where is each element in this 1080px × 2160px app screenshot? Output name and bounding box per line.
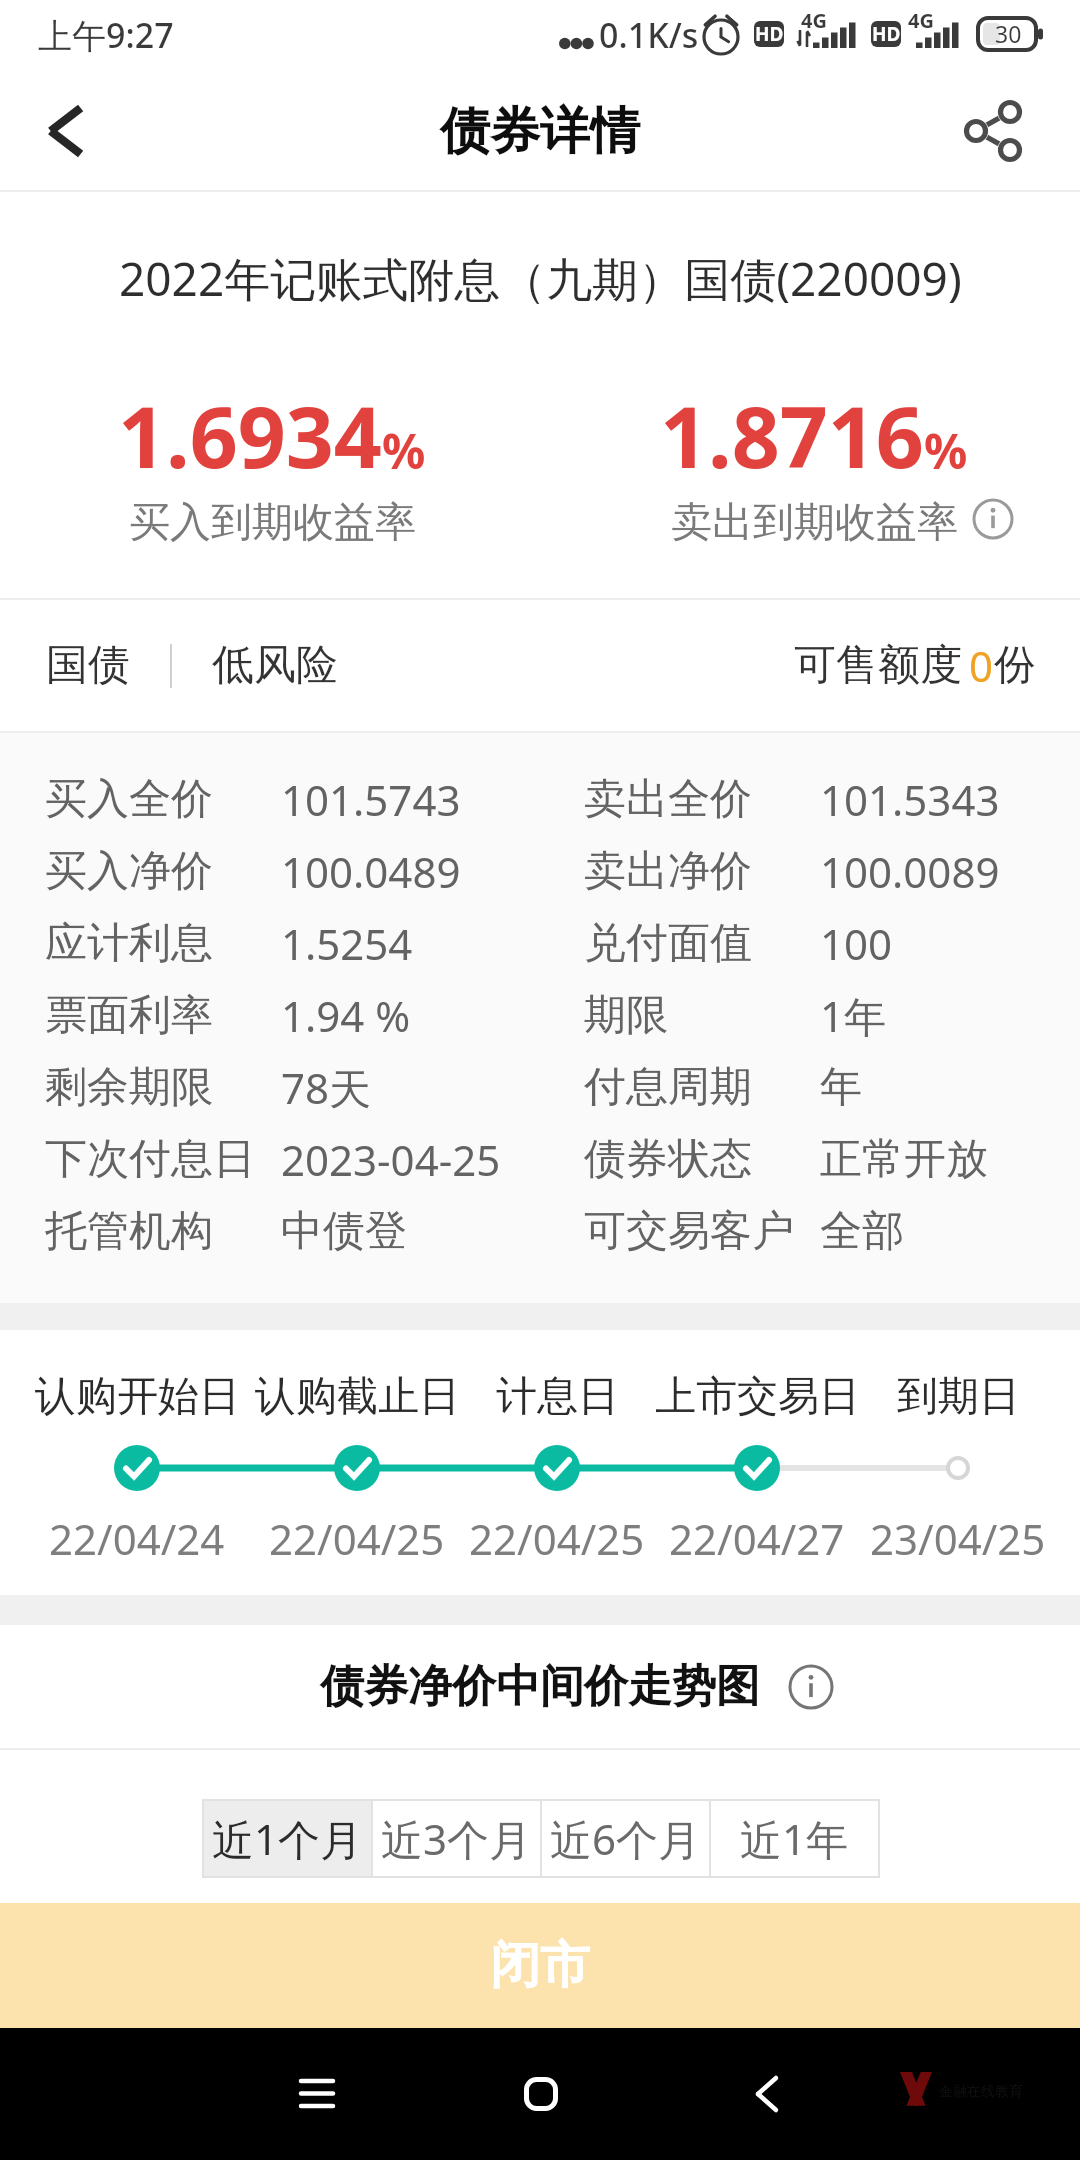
- staticText: 中债登: [281, 1205, 407, 1258]
- button[interactable]: Info: [779, 1655, 843, 1719]
- staticText: 卖出到期收益率: [671, 497, 958, 549]
- staticText: 1.5254: [281, 915, 413, 972]
- staticText: 到期日: [897, 1371, 1020, 1423]
- button[interactable]: 近1年: [711, 1801, 878, 1876]
- staticText: 买入到期收益率: [129, 497, 416, 549]
- staticText: %: [924, 418, 968, 483]
- button[interactable]: 近1个月: [204, 1801, 371, 1876]
- staticText: 78天: [281, 1059, 372, 1116]
- staticText: 可交易客户: [584, 1205, 794, 1258]
- staticText: 22/04/27: [669, 1510, 845, 1567]
- staticText: 低风险: [212, 639, 338, 692]
- button[interactable]: Back: [707, 2034, 827, 2154]
- staticText: %: [382, 418, 426, 483]
- staticText: 闭市: [490, 1934, 590, 1997]
- staticText: 下次付息日: [45, 1133, 255, 1186]
- button[interactable]: Info: [967, 493, 1019, 545]
- staticText: 卖出全价: [584, 773, 752, 826]
- staticText: 100: [820, 915, 893, 972]
- staticText: 22/04/24: [49, 1510, 225, 1567]
- staticText: 101.5343: [820, 771, 1000, 828]
- staticText: 22/04/25: [269, 1510, 445, 1567]
- staticText: 应计利息: [45, 917, 213, 970]
- staticText: 上午9:27: [38, 12, 174, 58]
- staticText: 近1个月: [212, 1810, 363, 1867]
- staticText: 票面利率: [45, 989, 213, 1042]
- button[interactable]: Recents: [257, 2034, 377, 2154]
- staticText: 2023-04-25: [281, 1131, 501, 1188]
- staticText: 1年: [820, 987, 887, 1044]
- staticText: 4G: [908, 7, 934, 34]
- staticText: 兑付面值: [584, 917, 752, 970]
- button[interactable]: 近6个月: [542, 1801, 709, 1876]
- button[interactable]: 闭市: [0, 1903, 1080, 2028]
- staticText: 付息周期: [584, 1061, 752, 1114]
- staticText: 金融在线教育: [939, 2083, 1023, 2101]
- staticText: 期限: [584, 989, 668, 1042]
- button[interactable]: Back: [0, 72, 130, 190]
- button[interactable]: 近3个月: [373, 1801, 540, 1876]
- staticText: 30: [995, 18, 1022, 49]
- staticText: 1.94 %: [281, 987, 411, 1044]
- staticText: 认购截止日: [255, 1371, 460, 1423]
- staticText: HD: [755, 21, 784, 47]
- staticText: 托管机构: [45, 1205, 213, 1258]
- staticText: 国债: [46, 639, 130, 692]
- staticText: 年: [820, 1061, 862, 1114]
- staticText: 0: [969, 637, 994, 694]
- staticText: 债券净价中间价走势图: [320, 1659, 760, 1714]
- staticText: 买入净价: [45, 845, 213, 898]
- staticText: 正常开放: [820, 1133, 988, 1186]
- staticText: 近6个月: [550, 1810, 701, 1867]
- staticText: 100.0489: [281, 843, 461, 900]
- staticText: 全部: [820, 1205, 904, 1258]
- button[interactable]: Share: [948, 72, 1040, 190]
- staticText: 近3个月: [381, 1810, 532, 1867]
- button[interactable]: Home: [481, 2034, 601, 2154]
- staticText: 计息日: [496, 1371, 619, 1423]
- staticText: 100.0089: [820, 843, 1000, 900]
- staticText: HD: [872, 21, 901, 47]
- staticText: 1.6934: [118, 378, 382, 492]
- staticText: 债券详情: [440, 100, 640, 163]
- staticText: 近1年: [740, 1810, 849, 1867]
- staticText: 23/04/25: [870, 1510, 1046, 1567]
- staticText: 认购开始日: [35, 1371, 240, 1423]
- staticText: 2022年记账式附息（九期）国债(220009): [119, 247, 962, 310]
- staticText: 份: [994, 639, 1036, 692]
- staticText: 0.1K/s: [599, 12, 699, 58]
- staticText: 剩余期限: [45, 1061, 213, 1114]
- staticText: 上市交易日: [655, 1371, 860, 1423]
- staticText: 可售额度: [794, 639, 962, 692]
- staticText: 买入全价: [45, 773, 213, 826]
- staticText: 卖出净价: [584, 845, 752, 898]
- staticText: 101.5743: [281, 771, 461, 828]
- staticText: 22/04/25: [469, 1510, 645, 1567]
- staticText: 1.8716: [660, 378, 924, 492]
- staticText: 债券状态: [584, 1133, 752, 1186]
- staticText: 4G: [801, 7, 827, 34]
